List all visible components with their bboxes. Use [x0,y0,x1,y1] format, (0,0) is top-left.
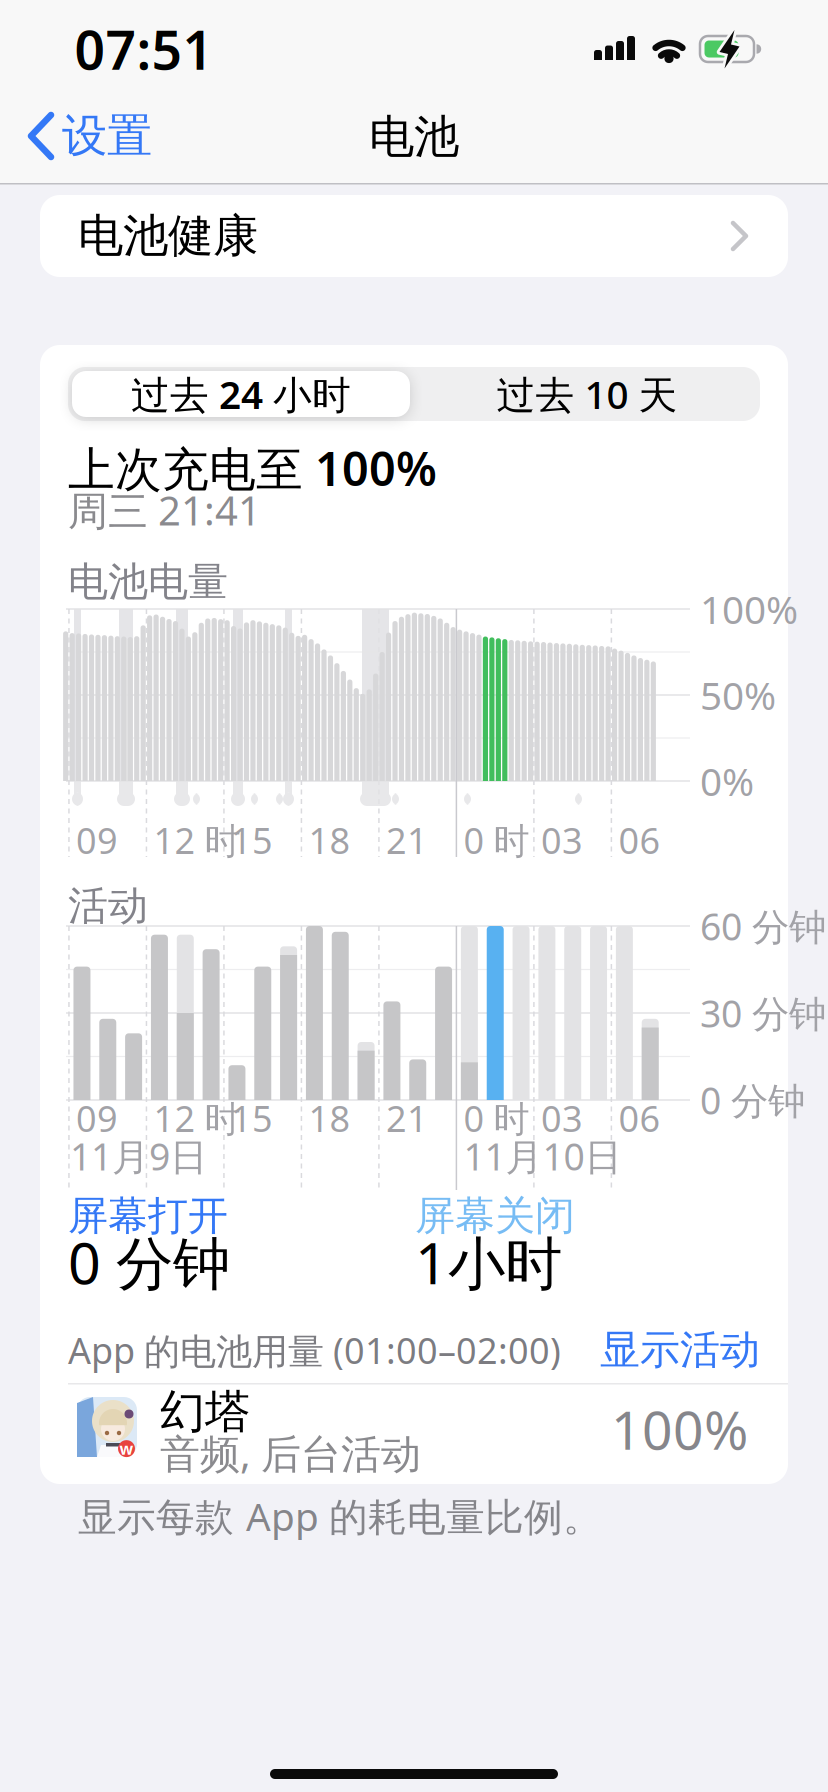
staticText: 幻塔 [160,1384,250,1440]
staticText: 03 [541,1094,583,1142]
button[interactable]: 过去 10 天 [414,367,760,421]
staticText: 周三 21:41 [68,483,261,536]
staticText: App 的电池用量 (01:00–02:00) [68,1326,561,1374]
staticText: 100% [700,583,798,635]
staticText: 21 [386,816,428,864]
staticText: 18 [308,816,350,864]
staticText: 设置 [62,108,152,164]
staticText: 12 时 [153,1094,240,1142]
staticText: 03 [541,816,583,864]
staticText: 15 [231,816,273,864]
staticText: 1小时 [415,1224,562,1300]
button[interactable]: 返回设置 [22,95,192,179]
staticText: 60 分钟 [700,901,826,951]
staticText: 0 时 [463,816,529,864]
staticText: 18 [308,1094,350,1142]
staticText: 30 分钟 [700,988,826,1038]
staticText: 电池电量 [68,557,228,606]
staticText: 06 [618,816,660,864]
button[interactable]: 电池健康 [40,195,788,277]
staticText: 过去 24 小时 [131,368,351,420]
staticText: 100% [611,1394,748,1464]
staticText: 0% [700,755,754,807]
button[interactable]: w [40,1384,788,1484]
staticText: 过去 10 天 [496,368,677,420]
staticText: 活动 [68,881,148,930]
staticText: 上次充电至 100% [68,437,437,499]
staticText: 0 分钟 [700,1075,805,1125]
staticText: 显示活动 [600,1325,760,1374]
staticText: 15 [231,1094,273,1142]
staticText: 屏幕打开 [68,1191,228,1240]
staticText: 0 分钟 [68,1224,230,1300]
button[interactable]: 显示活动 [560,1325,760,1374]
staticText: 音频, 后台活动 [160,1426,421,1479]
staticText: 09 [76,816,118,864]
staticText: 50% [700,669,776,721]
staticText: 显示每款 App 的耗电量比例。 [78,1490,602,1542]
staticText: 11月10日 [463,1131,621,1181]
staticText: 0 时 [463,1094,529,1142]
staticText: 06 [618,1094,660,1142]
staticText: 09 [76,1094,118,1142]
staticText: 电池健康 [78,208,258,264]
staticText: w [119,1438,133,1459]
staticText: 电池 [369,109,459,165]
staticText: 21 [386,1094,428,1142]
staticText: 屏幕关闭 [415,1191,575,1240]
staticText: 11月9日 [70,1131,207,1181]
staticText: 12 时 [153,816,240,864]
staticText: 07:51 [74,14,213,84]
button[interactable]: 过去 24 小时 [68,367,414,421]
